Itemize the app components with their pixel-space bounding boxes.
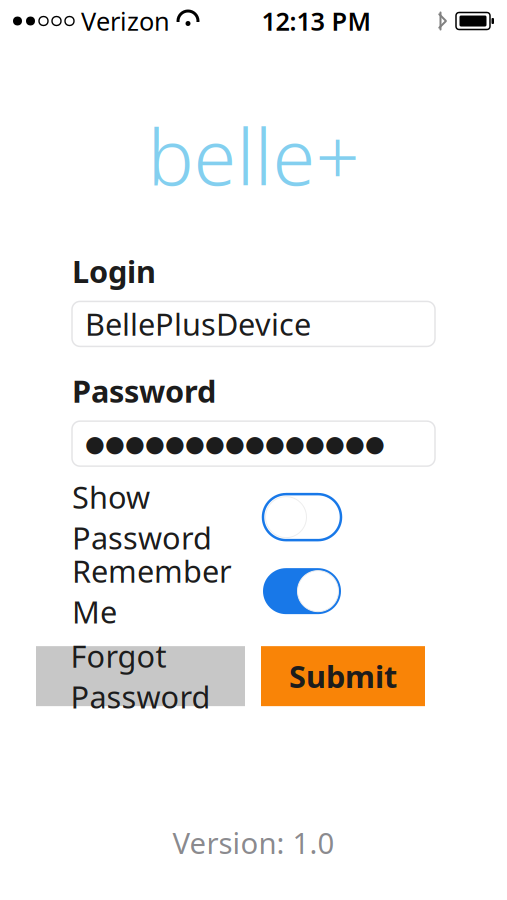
staticText: Password	[72, 370, 216, 411]
staticText: 12:13 PM	[261, 4, 371, 38]
staticText: belle+	[147, 104, 359, 207]
button[interactable]: Submit	[261, 646, 425, 706]
button[interactable]: Show Password	[72, 494, 435, 540]
staticText: BellePlusDevice	[85, 304, 311, 344]
staticText: Show Password	[72, 476, 212, 558]
staticText: Submit	[289, 656, 397, 696]
staticText: Login	[72, 251, 156, 291]
button[interactable]: Remember Me	[72, 568, 435, 614]
staticText: ●●●●●●●●●●●●●●●	[85, 431, 385, 456]
staticText: Version: 1.0	[172, 823, 334, 862]
staticText: Remember Me	[72, 550, 232, 632]
staticText: Verizon	[81, 4, 170, 38]
button[interactable]: Forgot Password	[36, 646, 245, 706]
staticText: Forgot Password	[70, 635, 210, 717]
